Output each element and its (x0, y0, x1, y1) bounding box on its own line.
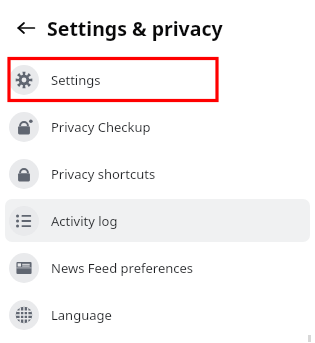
staticText: News Feed preferences (51, 259, 194, 277)
button[interactable]: Privacy Checkup (5, 105, 310, 148)
staticText: Settings (51, 71, 101, 89)
staticText: Language (51, 306, 112, 324)
staticText: Activity log (51, 212, 118, 230)
button[interactable]: Privacy shortcuts (5, 152, 310, 195)
staticText: Settings & privacy (47, 15, 223, 42)
button[interactable]: Activity log (5, 199, 310, 242)
button[interactable]: News Feed preferences (5, 246, 310, 289)
button[interactable]: Language (5, 293, 310, 336)
staticText: Privacy Checkup (51, 118, 151, 136)
button[interactable]: Back (8, 10, 44, 46)
button[interactable]: Settings (5, 58, 310, 101)
staticText: Privacy shortcuts (51, 165, 156, 183)
